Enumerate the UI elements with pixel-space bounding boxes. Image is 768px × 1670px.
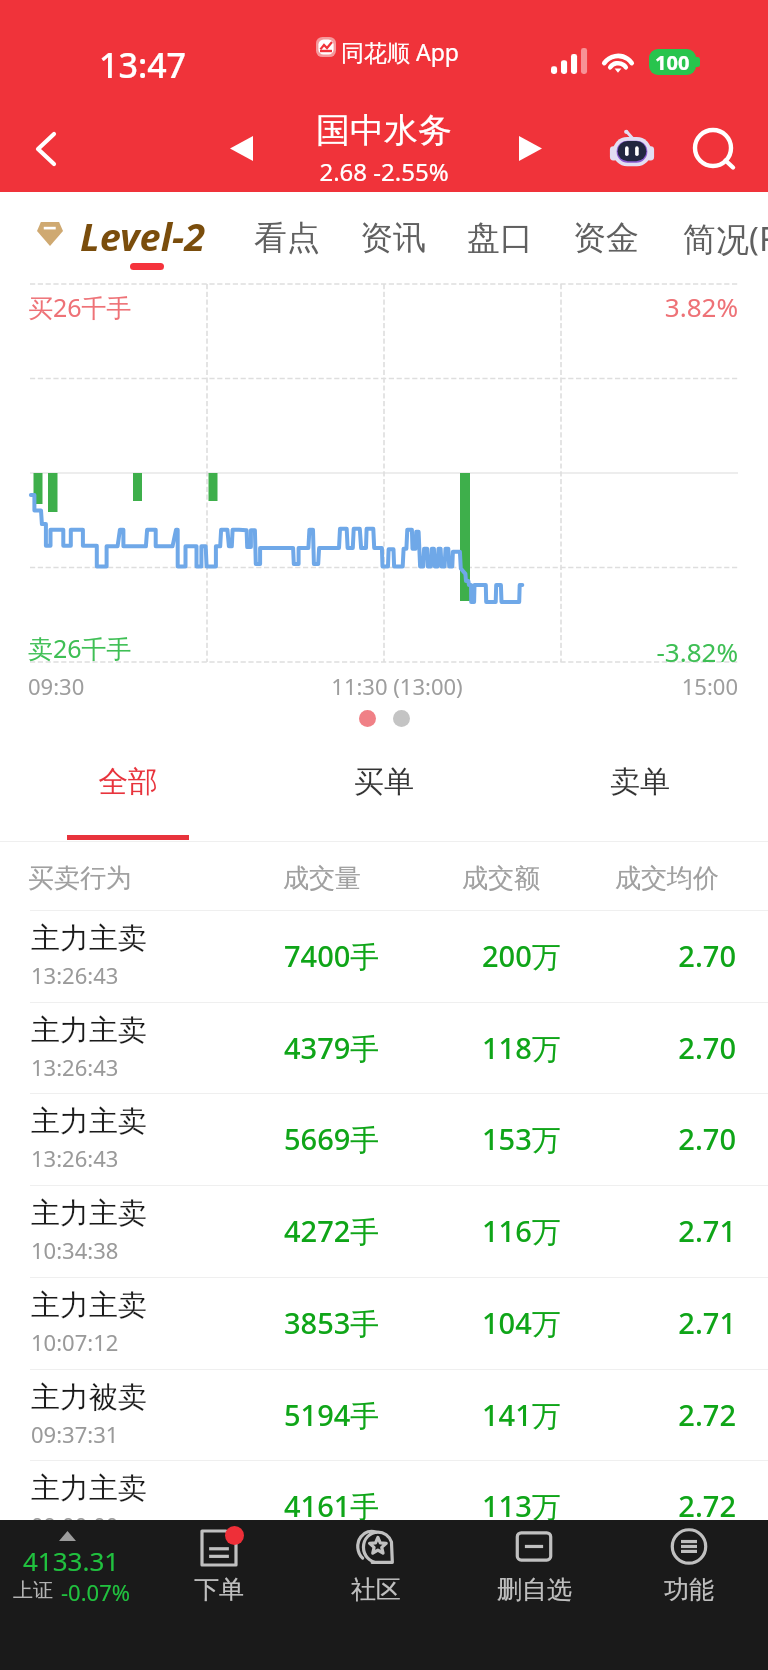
- button[interactable]: 功能: [625, 1520, 753, 1612]
- staticText: 卖单: [610, 763, 670, 801]
- staticText: 简况(F: [683, 216, 768, 261]
- staticText: 成交额: [426, 862, 576, 895]
- staticText: 2.71: [536, 1303, 736, 1342]
- button[interactable]: 资讯: [360, 192, 426, 284]
- staticText: 上证: [13, 1578, 53, 1603]
- staticText: 看点: [254, 217, 320, 259]
- staticText: 2.70: [536, 1119, 736, 1158]
- staticText: 2.72: [536, 1486, 736, 1525]
- staticText: 社区: [351, 1574, 401, 1605]
- staticText: 全部: [98, 763, 158, 801]
- staticText: 09:30: [28, 671, 85, 701]
- staticText: 主力主卖: [31, 1012, 147, 1049]
- staticText: 删自选: [497, 1574, 572, 1605]
- button[interactable]: 资金: [573, 192, 639, 284]
- button[interactable]: 卖单: [512, 735, 768, 841]
- staticText: 买26千手: [28, 290, 132, 324]
- button[interactable]: 买单: [256, 735, 512, 841]
- staticText: -3.82%: [538, 634, 738, 669]
- staticText: 国中水务: [284, 109, 484, 152]
- button[interactable]: 主力主卖: [0, 1185, 768, 1276]
- staticText: 4379手: [284, 1028, 380, 1068]
- staticText: 2.70: [536, 1028, 736, 1067]
- staticText: 5669手: [284, 1119, 380, 1159]
- button[interactable]: 简况(F: [683, 192, 768, 284]
- staticText: 4272手: [284, 1211, 380, 1251]
- button[interactable]: 主力主卖: [0, 1002, 768, 1093]
- staticText: 13:26:43: [31, 960, 119, 990]
- button[interactable]: 主力主卖: [0, 1460, 768, 1551]
- staticText: 卖26千手: [28, 631, 132, 665]
- staticText: -0.07%: [61, 1577, 131, 1607]
- staticText: 资讯: [360, 217, 426, 259]
- staticText: 5194手: [284, 1395, 380, 1435]
- staticText: 主力主卖: [31, 1195, 147, 1232]
- button[interactable]: 下单: [155, 1520, 283, 1612]
- staticText: 113万: [482, 1486, 561, 1526]
- staticText: 下单: [194, 1574, 244, 1605]
- staticText: 盘口: [467, 217, 533, 259]
- button[interactable]: Back: [5, 106, 87, 192]
- button[interactable]: Previous stock: [206, 106, 278, 192]
- button[interactable]: [24, 192, 222, 284]
- staticText: 100: [655, 49, 690, 75]
- staticText: 153万: [482, 1119, 561, 1159]
- staticText: 买单: [354, 763, 414, 801]
- button[interactable]: Search: [672, 106, 758, 192]
- staticText: 13:26:43: [31, 1143, 119, 1173]
- staticText: 2.70: [536, 936, 736, 975]
- button[interactable]: 主力主卖: [0, 1277, 768, 1368]
- staticText: 2.72: [536, 1395, 736, 1434]
- button[interactable]: 盘口: [467, 192, 533, 284]
- staticText: 13:47: [99, 42, 187, 88]
- staticText: 104万: [482, 1303, 561, 1343]
- staticText: 主力主卖: [31, 1470, 147, 1507]
- staticText: 主力主卖: [31, 1103, 147, 1140]
- staticText: 118万: [482, 1028, 561, 1068]
- staticText: 同花顺 App: [341, 36, 459, 67]
- staticText: 10:07:12: [31, 1327, 119, 1357]
- staticText: 主力被卖: [31, 1379, 147, 1416]
- staticText: 成交量: [247, 862, 397, 895]
- button[interactable]: 社区: [312, 1520, 440, 1612]
- staticText: 7400手: [284, 936, 380, 976]
- staticText: 15:00: [538, 671, 738, 701]
- staticText: 3.82%: [538, 289, 738, 324]
- staticText: 资金: [573, 217, 639, 259]
- staticText: 功能: [664, 1574, 714, 1605]
- button[interactable]: 主力主卖: [0, 1093, 768, 1184]
- staticText: 4133.31: [23, 1543, 120, 1578]
- staticText: 买卖行为: [28, 862, 132, 895]
- staticText: Level-2: [80, 210, 206, 262]
- staticText: 2.71: [536, 1211, 736, 1250]
- button[interactable]: 全部: [0, 735, 256, 841]
- button[interactable]: AI assistant: [592, 106, 672, 192]
- staticText: 4161手: [284, 1486, 380, 1526]
- button[interactable]: 主力主卖: [0, 910, 768, 1001]
- button[interactable]: 删自选: [470, 1520, 598, 1612]
- button[interactable]: 4133.31: [0, 1520, 150, 1612]
- button[interactable]: Next stock: [495, 106, 567, 192]
- staticText: 成交均价: [567, 862, 767, 895]
- staticText: 10:34:38: [31, 1235, 119, 1265]
- staticText: 主力主卖: [31, 920, 147, 957]
- staticText: 2.68 -2.55%: [284, 155, 484, 188]
- staticText: 200万: [482, 936, 561, 976]
- staticText: 11:30 (13:00): [297, 671, 497, 701]
- button[interactable]: 主力被卖: [0, 1369, 768, 1460]
- button[interactable]: 看点: [254, 192, 320, 284]
- staticText: 09:00:00: [31, 1510, 119, 1540]
- staticText: 13:26:43: [31, 1052, 119, 1082]
- staticText: 主力主卖: [31, 1287, 147, 1324]
- staticText: 09:37:31: [31, 1419, 119, 1449]
- staticText: 3853手: [284, 1303, 380, 1343]
- staticText: 116万: [482, 1211, 561, 1251]
- staticText: 141万: [482, 1395, 561, 1435]
